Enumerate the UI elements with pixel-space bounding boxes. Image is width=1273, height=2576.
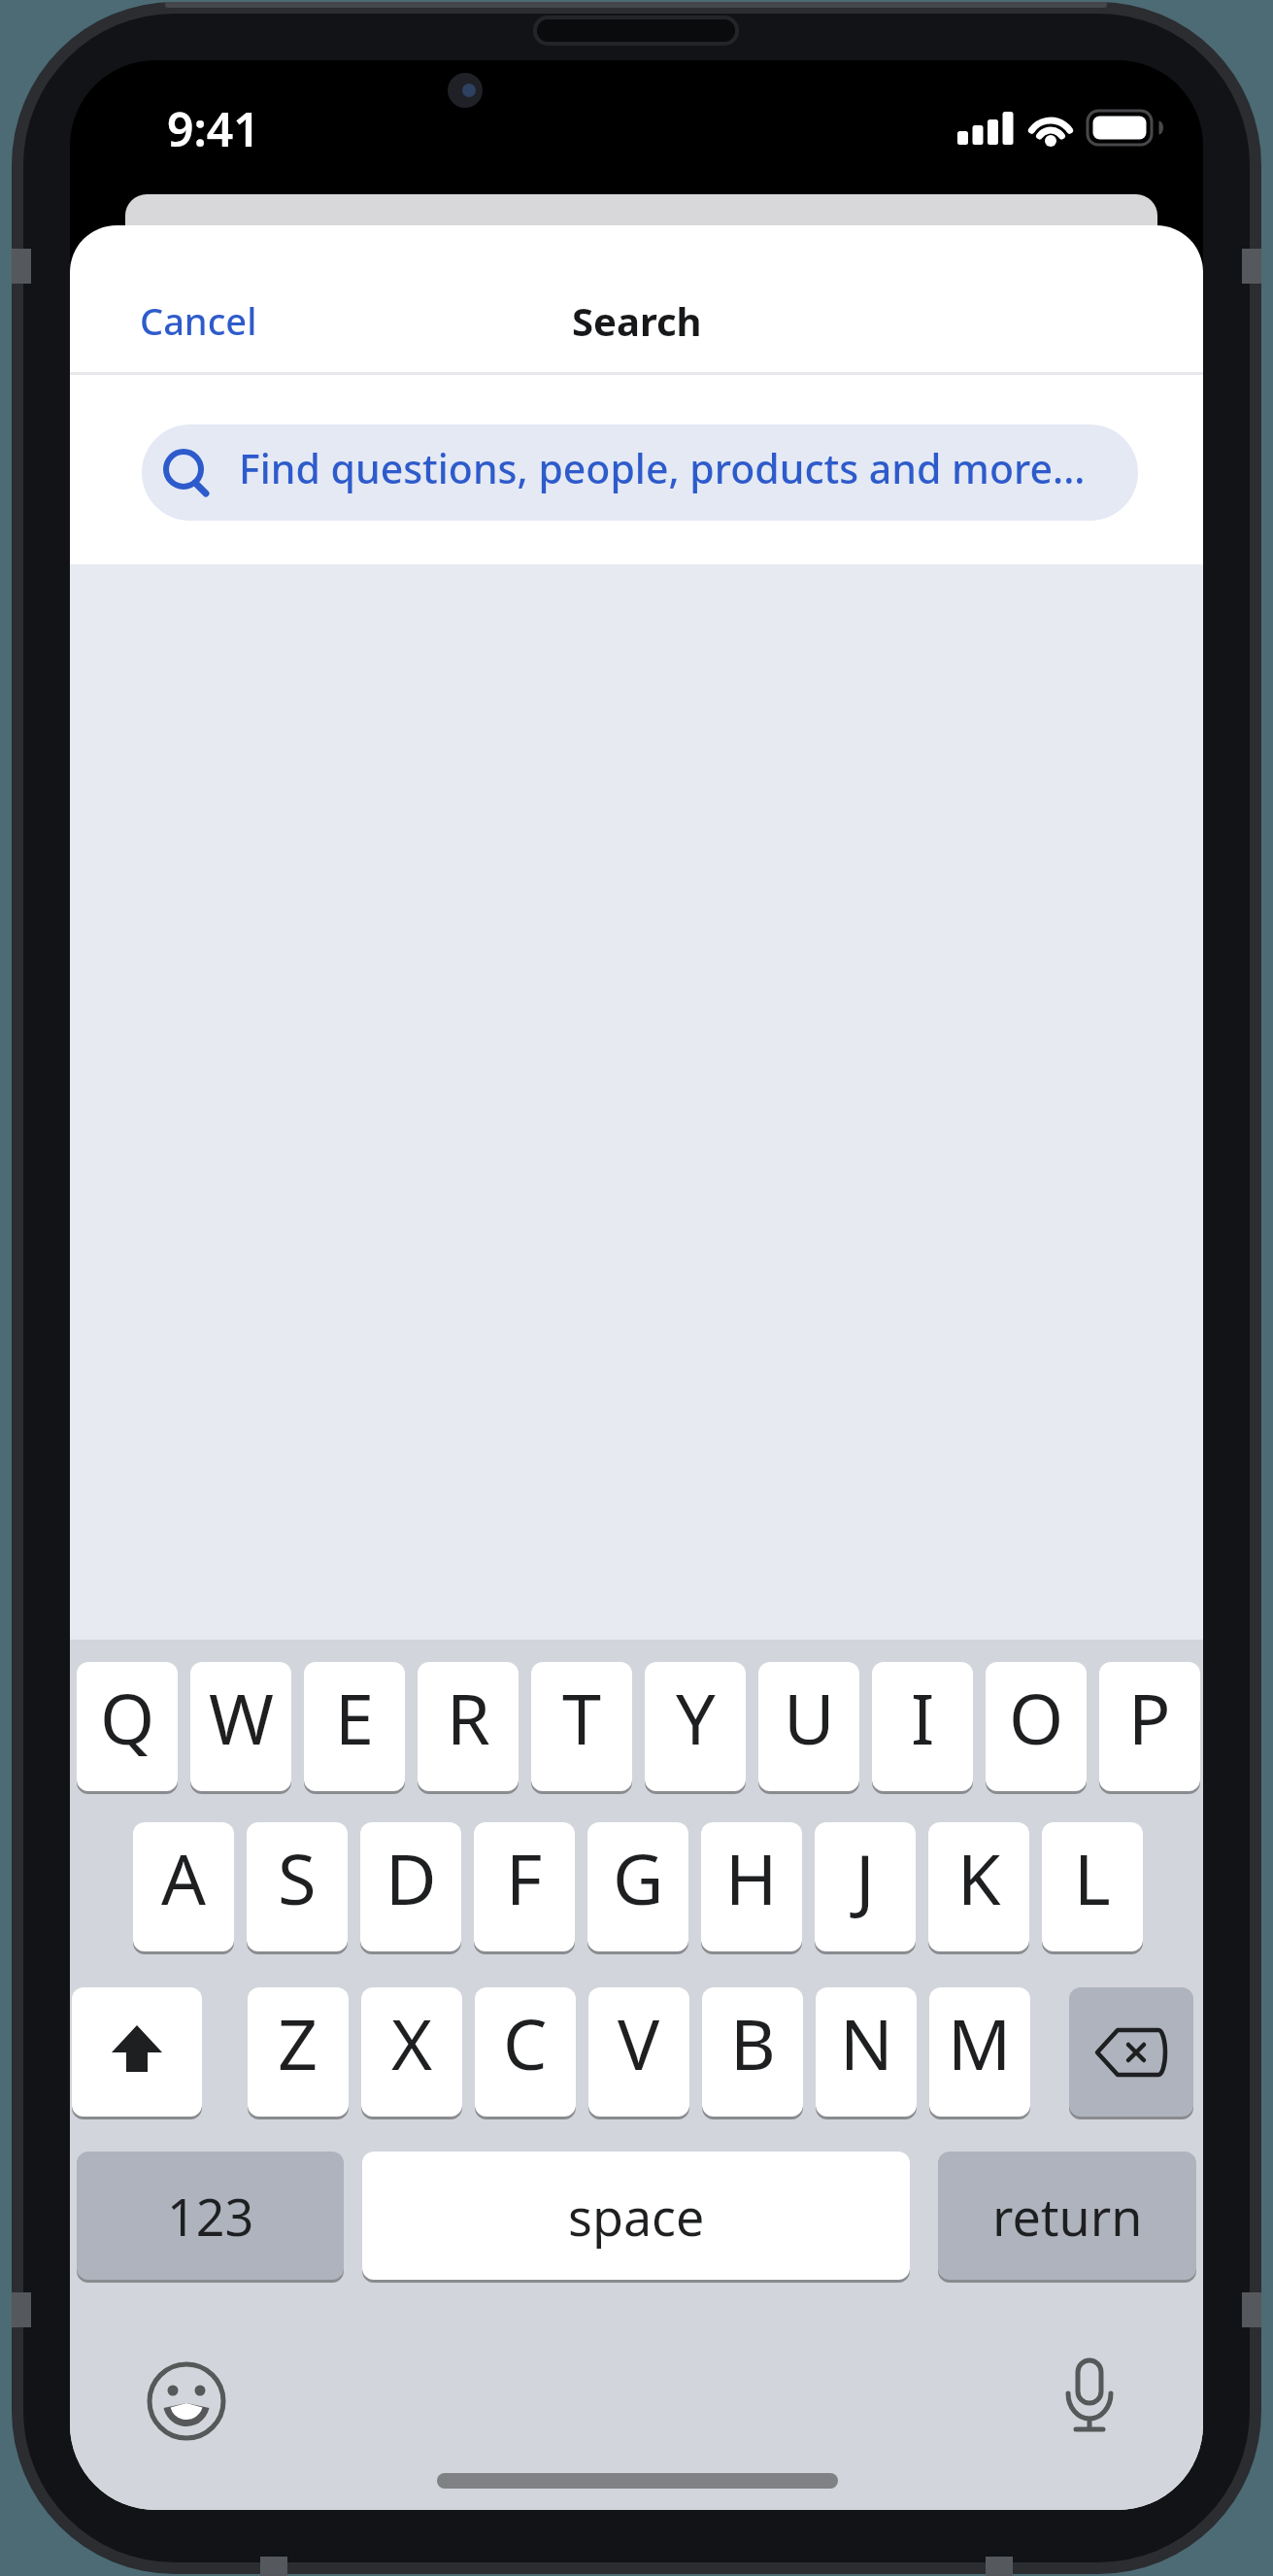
button[interactable]: C [475,1987,576,2117]
staticText: F [506,1830,543,1925]
button[interactable]: H [701,1822,802,1951]
staticText: Y [676,1670,716,1765]
button[interactable]: R [418,1662,519,1791]
staticText: H [725,1830,778,1925]
staticText: J [855,1830,875,1925]
button[interactable]: F [474,1822,575,1951]
button[interactable] [1069,1987,1193,2117]
button[interactable] [72,1987,202,2117]
staticText: P [1128,1670,1171,1765]
staticText: O [1009,1670,1064,1765]
button[interactable]: space [362,2152,910,2280]
button[interactable]: Cancel [140,293,285,348]
button[interactable]: L [1042,1822,1143,1951]
button[interactable]: O [986,1662,1087,1791]
button[interactable]: X [361,1987,462,2117]
staticText: N [840,1995,893,2090]
staticText: S [278,1830,317,1925]
staticText: G [613,1830,664,1925]
staticText: R [447,1670,490,1765]
staticText: A [161,1830,207,1925]
staticText: V [618,1995,660,2090]
staticText: Z [278,1995,318,2090]
staticText: Cancel [140,295,257,346]
button[interactable]: S [247,1822,348,1951]
button[interactable]: J [815,1822,916,1951]
staticText: 9:41 [167,97,260,160]
button[interactable]: T [531,1662,632,1791]
staticText: W [209,1670,274,1765]
button[interactable]: Z [248,1987,349,2117]
staticText: L [1074,1830,1111,1925]
staticText: M [948,1995,1012,2090]
staticText: space [568,2182,705,2251]
button[interactable]: return [938,2152,1196,2280]
button[interactable]: M [929,1987,1030,2117]
button[interactable]: P [1099,1662,1200,1791]
staticText: C [503,1995,548,2090]
button[interactable]: Q [77,1662,178,1791]
button[interactable]: A [133,1822,234,1951]
staticText: E [335,1670,375,1765]
button[interactable]: Y [645,1662,746,1791]
staticText: 123 [167,2182,254,2251]
staticText: Find questions, people, products and mor… [239,441,1086,495]
button[interactable]: U [758,1662,859,1791]
staticText: I [911,1670,935,1765]
button[interactable]: W [190,1662,291,1791]
button[interactable]: E [304,1662,405,1791]
staticText: K [957,1830,1001,1925]
button[interactable]: I [872,1662,973,1791]
staticText: D [385,1830,437,1925]
button[interactable]: G [587,1822,688,1951]
button[interactable] [1051,2358,1128,2440]
button[interactable]: V [588,1987,689,2117]
button[interactable]: B [702,1987,803,2117]
button[interactable]: 123 [77,2152,344,2280]
staticText: X [391,1995,433,2090]
staticText: Q [100,1670,155,1765]
staticText: U [784,1670,835,1765]
staticText: return [992,2182,1143,2251]
button[interactable]: K [928,1822,1029,1951]
staticText: B [730,1995,776,2090]
staticText: T [562,1670,602,1765]
button[interactable]: D [360,1822,461,1951]
button[interactable] [148,2362,225,2440]
staticText: Search [572,294,702,347]
button[interactable]: N [816,1987,917,2117]
button[interactable]: Find questions, people, products and mor… [142,424,1138,521]
